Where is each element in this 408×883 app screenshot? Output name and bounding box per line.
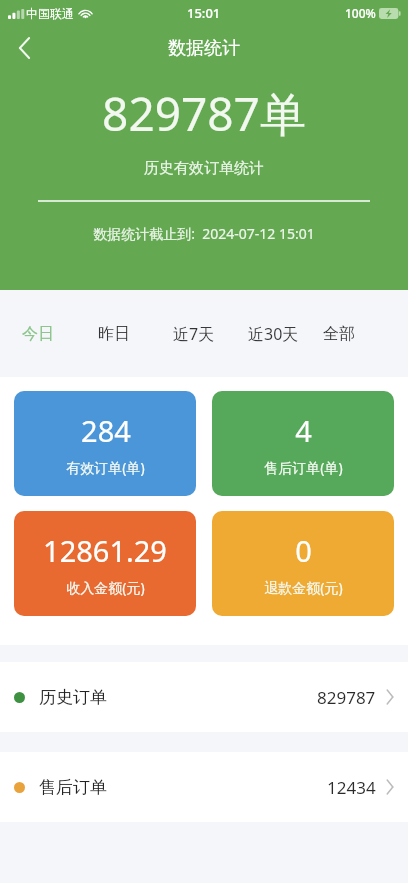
- button[interactable]: 售后订单: [0, 752, 408, 822]
- staticText: 12861.29: [43, 531, 167, 570]
- staticText: 数据统计截止到: 2024-07-12 15:01: [0, 224, 408, 243]
- staticText: 829787单: [0, 82, 408, 145]
- staticText: 100%: [345, 5, 376, 21]
- staticText: 近7天: [173, 323, 215, 345]
- staticText: 昨日: [98, 324, 130, 344]
- staticText: 15:01: [187, 4, 221, 22]
- staticText: 829787: [317, 686, 376, 709]
- staticText: 全部: [323, 324, 355, 344]
- staticText: 今日: [22, 324, 54, 344]
- staticText: 历史订单: [39, 687, 107, 708]
- staticText: 数据统计: [168, 37, 240, 60]
- button[interactable]: 今日: [22, 310, 98, 358]
- staticText: 0: [295, 531, 312, 570]
- button[interactable]: 0: [212, 511, 394, 616]
- button[interactable]: 历史订单: [0, 662, 408, 732]
- button[interactable]: 全部: [323, 310, 392, 358]
- button[interactable]: 12861.29: [14, 511, 196, 616]
- button[interactable]: 近7天: [173, 310, 248, 358]
- button[interactable]: 昨日: [98, 310, 173, 358]
- button[interactable]: 284: [14, 391, 196, 496]
- staticText: 收入金额(元): [66, 578, 145, 597]
- button[interactable]: 4: [212, 391, 394, 496]
- button[interactable]: Back: [0, 26, 48, 70]
- staticText: 中国联通: [26, 6, 74, 21]
- staticText: 近30天: [248, 323, 299, 345]
- staticText: 售后订单(单): [264, 458, 343, 477]
- button[interactable]: 近30天: [248, 310, 323, 358]
- staticText: 售后订单: [39, 777, 107, 798]
- staticText: 12434: [327, 776, 376, 799]
- staticText: 284: [81, 411, 131, 450]
- staticText: 退款金额(元): [264, 578, 343, 597]
- staticText: 历史有效订单统计: [0, 159, 408, 178]
- staticText: 有效订单(单): [66, 458, 145, 477]
- staticText: 4: [295, 411, 312, 450]
